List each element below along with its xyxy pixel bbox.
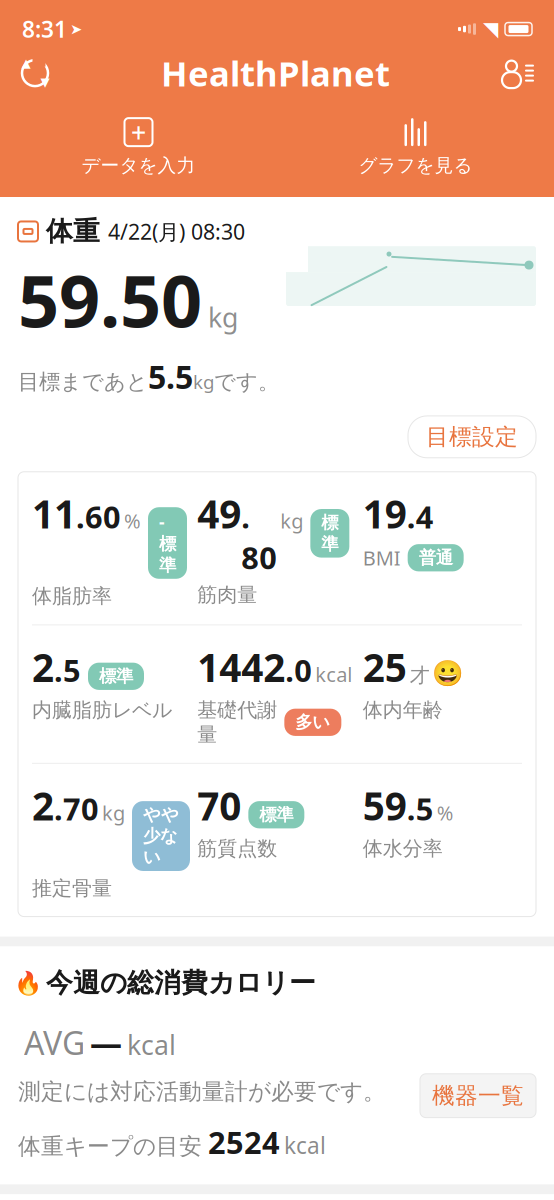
staticText: 才 (410, 663, 430, 688)
staticText: BMI (363, 544, 401, 571)
staticText: 19 (363, 488, 407, 539)
staticText: 測定には対応活動量計が必要です。 (18, 1078, 386, 1106)
staticText: 普通 (419, 547, 453, 568)
staticText: 機器一覧 (432, 1082, 524, 1110)
button[interactable]: グラフを見る (277, 112, 554, 183)
staticText: .0 (285, 650, 312, 690)
staticText: データを入力 (81, 154, 195, 177)
staticText: kg (208, 299, 238, 335)
staticText: kg (102, 799, 125, 826)
staticText: 25 (363, 641, 407, 693)
staticText: 目標設定 (426, 423, 518, 451)
staticText: 今週の総消費カロリー (46, 966, 316, 999)
staticText: 🔥 (14, 970, 42, 996)
staticText: 59 (363, 780, 407, 831)
staticText: .5 (407, 788, 434, 829)
staticText: 1442 (197, 641, 285, 693)
staticText: .70 (54, 788, 99, 829)
staticText: 標準 (321, 512, 338, 555)
staticText: 8:31 (22, 14, 67, 44)
staticText: 筋肉量 (197, 583, 257, 607)
staticText: 目標まであと (18, 369, 148, 395)
staticText: — (90, 1021, 122, 1064)
staticText: 2 (32, 641, 54, 693)
staticText: 2 (32, 780, 54, 831)
staticText: 2524 (208, 1122, 280, 1162)
button[interactable]: + (0, 112, 277, 183)
staticText: .5 (54, 650, 81, 690)
staticText: .4 (407, 496, 434, 537)
staticText: 標準 (99, 666, 133, 687)
staticText: グラフを見る (358, 154, 472, 177)
staticText: ➤ (70, 21, 82, 37)
staticText: やや少ない (143, 804, 179, 868)
staticText: HealthPlanet (161, 50, 390, 96)
staticText: 😀 (432, 659, 464, 688)
staticText: ▲ (21, 56, 30, 70)
staticText: 59.50 (18, 252, 202, 347)
staticText: 11 (32, 488, 76, 539)
button[interactable]: 機器一覧 (420, 1074, 536, 1118)
staticText: 体脂肪率 (32, 584, 112, 608)
staticText: 多い (295, 712, 330, 733)
staticText: 49 (197, 488, 241, 539)
staticText: 内臓脂肪レベル (32, 698, 172, 722)
staticText: % (437, 799, 454, 826)
staticText: kcal (284, 1130, 326, 1160)
button[interactable]: アカウント (495, 53, 540, 93)
button[interactable]: データを同期 (14, 52, 56, 94)
staticText: 標準 (259, 804, 293, 825)
staticText: 体重キープの目安 (18, 1132, 202, 1160)
staticText: .60 (76, 496, 121, 537)
staticText: です。 (214, 369, 279, 395)
staticText: 基礎代謝量 (197, 698, 277, 747)
staticText: .80 (241, 496, 277, 578)
staticText: 体重 (46, 215, 100, 248)
staticText: 70 (197, 780, 241, 831)
staticText: ▼ (40, 75, 49, 89)
staticText: kg (193, 369, 214, 394)
staticText: + (131, 114, 146, 150)
staticText: % (124, 507, 141, 534)
staticText: kg (280, 507, 303, 534)
staticText: 推定骨量 (32, 876, 112, 901)
staticText: 5.5 (148, 355, 193, 398)
staticText: kcal (315, 661, 352, 688)
staticText: AVG (24, 1021, 85, 1064)
staticText: 4/22(月) 08:30 (108, 217, 245, 246)
staticText: 体水分率 (363, 836, 443, 861)
button[interactable]: 目標設定 (408, 416, 536, 458)
staticText: ◥ (483, 18, 498, 40)
staticText: 筋質点数 (197, 836, 277, 861)
staticText: - 標準 (159, 510, 176, 576)
staticText: 体内年齢 (363, 698, 443, 722)
staticText: kcal (127, 1027, 176, 1062)
